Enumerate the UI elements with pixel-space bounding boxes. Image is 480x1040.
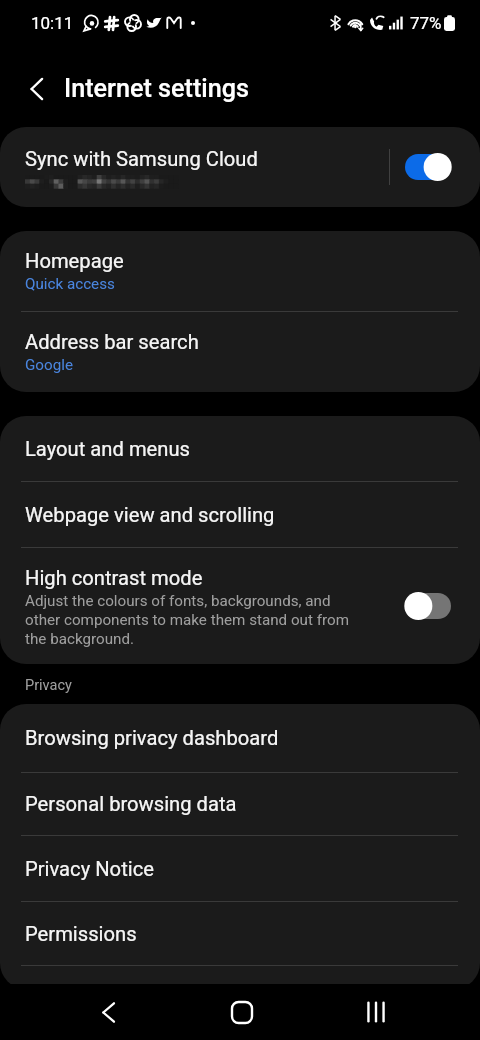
staticText: Personal browsing data — [25, 792, 237, 816]
button[interactable]: Address bar search — [0, 312, 480, 392]
staticText: Webpage view and scrolling — [25, 503, 275, 527]
button[interactable]: High contrast mode — [0, 548, 480, 664]
staticText: Browsing privacy dashboard — [25, 726, 279, 750]
staticText: Internet settings — [64, 74, 250, 104]
staticText: 77% — [410, 13, 442, 33]
staticText: Layout and menus — [25, 437, 190, 461]
staticText: Sync with Samsung Cloud — [25, 147, 258, 171]
button[interactable]: Sync with Samsung Cloud — [0, 127, 480, 207]
button[interactable]: Sync with Samsung Cloud, on — [405, 154, 451, 180]
button[interactable]: Navigate up — [13, 66, 59, 112]
button[interactable]: Home — [216, 986, 268, 1038]
staticText: Homepage — [25, 249, 124, 273]
button[interactable]: Back — [82, 986, 134, 1038]
button[interactable]: Permissions — [0, 902, 480, 965]
button[interactable]: Browsing privacy dashboard — [0, 704, 480, 772]
staticText: Privacy Notice — [25, 857, 154, 881]
staticText: Adjust the colours of fonts, backgrounds… — [25, 592, 360, 647]
button[interactable]: Personal browsing data — [0, 773, 480, 835]
staticText: High contrast mode — [25, 566, 203, 590]
button[interactable]: Layout and menus — [0, 416, 480, 481]
button[interactable]: Privacy Notice — [0, 836, 480, 901]
staticText: 10:11 — [31, 13, 74, 33]
staticText: Permissions — [25, 922, 137, 946]
button[interactable]: High contrast mode, off — [405, 593, 451, 619]
staticText: Google — [25, 356, 73, 374]
staticText: Address bar search — [25, 330, 199, 354]
button[interactable]: Homepage — [0, 231, 480, 311]
staticText: Quick access — [25, 275, 115, 293]
button[interactable]: Recent apps — [350, 986, 402, 1038]
button[interactable]: Webpage view and scrolling — [0, 482, 480, 547]
staticText: Privacy — [25, 677, 72, 694]
